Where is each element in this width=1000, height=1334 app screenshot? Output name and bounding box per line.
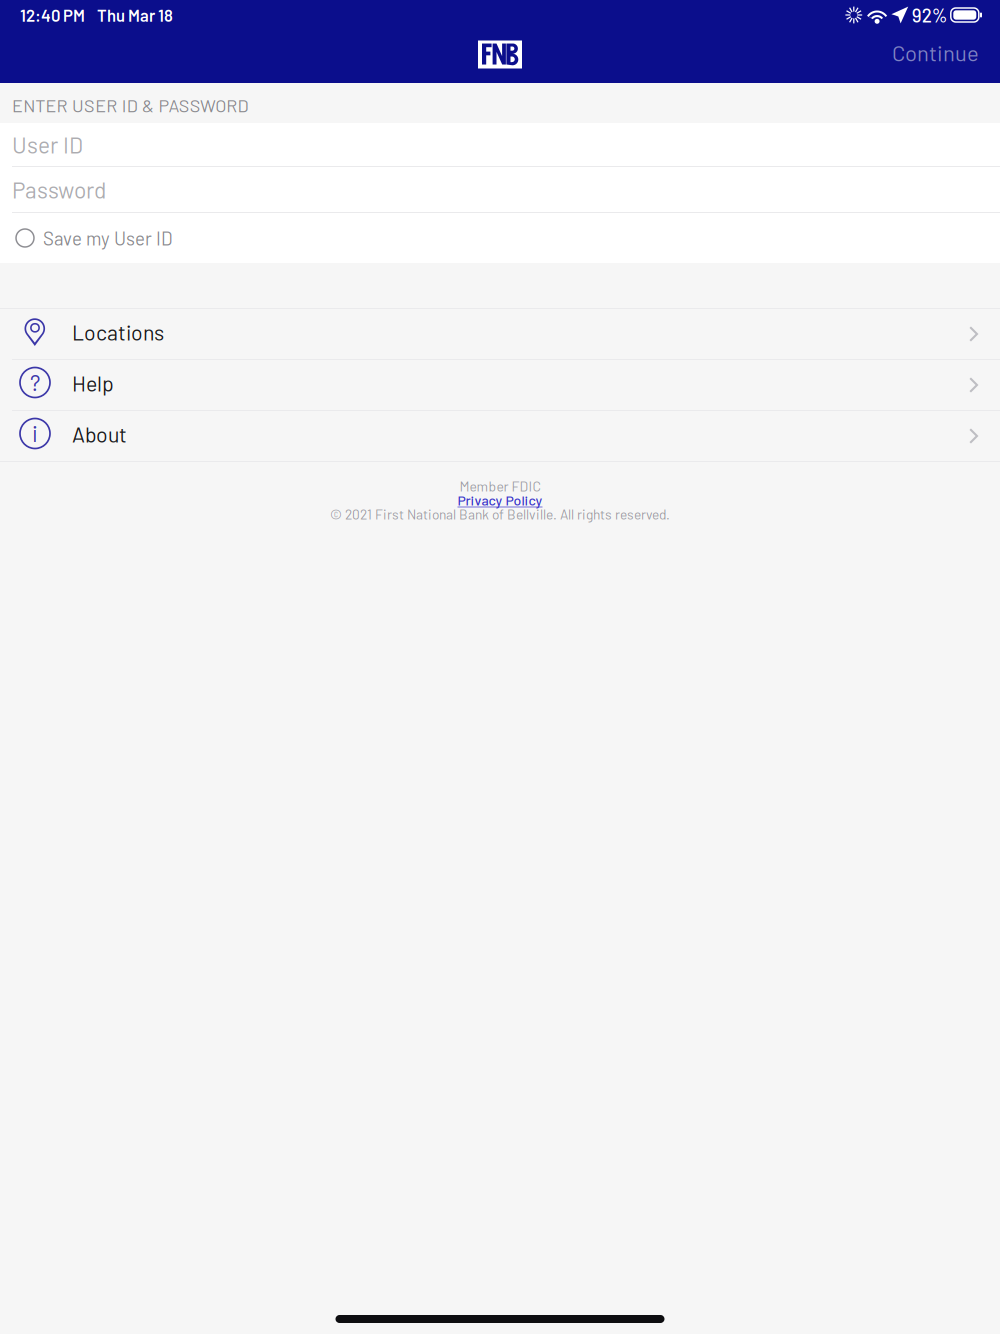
button[interactable]: Save my User ID [0,213,1000,263]
staticText: About [72,421,127,447]
staticText: ENTER USER ID & PASSWORD [12,94,248,116]
staticText: © 2021 First National Bank of Bellville.… [330,506,670,522]
staticText: Thu Mar 18 [97,5,173,25]
staticText: ? [30,368,40,396]
staticText: Save my User ID [43,227,173,249]
button[interactable]: ? [0,360,1000,410]
button[interactable]: User ID [0,123,1000,166]
staticText: Help [72,370,114,396]
staticText: i [32,419,38,447]
button[interactable]: Privacy Policy [457,493,542,507]
staticText: Password [12,176,106,203]
staticText: Privacy Policy [457,492,542,508]
staticText: 92% [912,4,948,26]
button[interactable]: Password [0,167,1000,212]
staticText: Member FDIC [459,478,540,494]
staticText: Continue [892,39,979,66]
staticText: User ID [12,131,83,158]
button[interactable]: Continue [871,30,1000,83]
button[interactable]: Locations [0,309,1000,359]
staticText: 12:40 PM [20,5,85,25]
staticText: Locations [72,319,164,345]
button[interactable]: i [0,411,1000,461]
